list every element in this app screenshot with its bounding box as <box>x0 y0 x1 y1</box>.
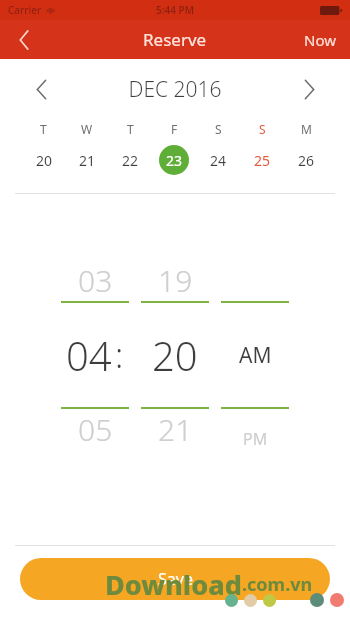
staticText: 20 <box>152 328 198 382</box>
staticText: AM <box>239 341 272 370</box>
staticText: T <box>40 121 47 137</box>
staticText: 05 <box>78 409 113 450</box>
staticText: DEC 2016 <box>58 75 292 104</box>
staticText: S <box>215 121 222 137</box>
button[interactable]: W <box>65 121 108 175</box>
staticText: 22 <box>122 151 139 170</box>
staticText: : <box>115 332 124 378</box>
staticText: 25 <box>254 151 271 170</box>
staticText: Now <box>304 30 336 50</box>
button[interactable]: AM <box>215 341 295 370</box>
staticText: 5:44 PM <box>156 3 194 17</box>
staticText: Reserve <box>143 28 207 51</box>
button[interactable]: M <box>284 121 328 175</box>
staticText: 20 <box>36 151 53 170</box>
staticText: S <box>259 121 266 137</box>
button[interactable]: Next month <box>292 72 326 106</box>
staticText: PM <box>243 428 268 450</box>
button[interactable]: Previous month <box>24 72 58 106</box>
button[interactable]: S <box>240 121 284 175</box>
button[interactable]: Back <box>0 20 48 59</box>
button[interactable]: S <box>196 121 240 175</box>
staticText: Carrier <box>8 3 42 17</box>
staticText: F <box>171 121 178 137</box>
staticText: 04 <box>66 328 112 382</box>
staticText: 21 <box>79 151 96 170</box>
staticText: 24 <box>210 151 227 170</box>
button[interactable]: T <box>22 121 65 175</box>
staticText: 19 <box>158 260 193 301</box>
staticText: 26 <box>298 151 315 170</box>
staticText: T <box>127 121 134 137</box>
button[interactable]: T <box>108 121 152 175</box>
staticText: W <box>81 121 93 137</box>
staticText: Save <box>158 568 193 590</box>
staticText: 21 <box>158 409 193 450</box>
staticText: M <box>301 121 312 137</box>
button[interactable]: 04 <box>55 328 135 382</box>
staticText: 03 <box>78 260 113 301</box>
button[interactable]: F <box>152 121 196 175</box>
button[interactable]: 20 <box>135 328 215 382</box>
staticText: 23 <box>166 151 183 170</box>
button[interactable]: Now <box>290 20 350 59</box>
staticText: .com.vn <box>242 572 313 597</box>
button[interactable]: Save <box>20 558 330 600</box>
staticText: Download <box>105 566 242 603</box>
